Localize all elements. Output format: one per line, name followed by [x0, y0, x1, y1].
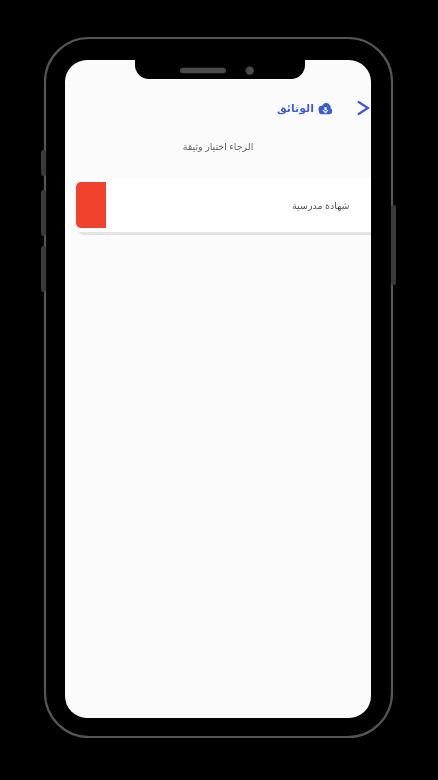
button[interactable]: الوثائق — [274, 99, 335, 118]
staticText: شهادة مدرسية — [292, 199, 350, 212]
button[interactable]: Next — [357, 98, 371, 118]
staticText: الوثائق — [276, 102, 314, 115]
staticText: الرجاء اختيار وثيقة — [65, 140, 371, 153]
button[interactable]: شهادة مدرسية — [76, 178, 371, 232]
other: Download documents — [318, 101, 333, 116]
